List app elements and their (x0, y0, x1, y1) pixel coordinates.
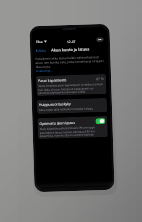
staticText: Optimoitu akun lataus (39, 120, 75, 126)
staticText: Akun kunto ja lataus (51, 46, 90, 53)
staticText: 12.47 (67, 39, 76, 43)
staticText: Paras kapasiteetti (38, 77, 67, 83)
staticText: Akun käyttöiän pidentämiseksi iPhone opp… (40, 125, 106, 137)
staticText: Akku (38, 48, 46, 53)
button[interactable]: Optimoitu akun lataus (37, 116, 108, 139)
staticText: Akku tukee tällä hetkellä normaalia huip… (39, 106, 94, 112)
button[interactable]: Takaisin Akku (35, 48, 46, 53)
staticText: 87 % (96, 76, 104, 81)
button[interactable]: Huippusuorituskyky (37, 98, 107, 114)
staticText: Huippusuorituskyky (39, 101, 71, 107)
button[interactable]: Paras kapasiteetti (36, 74, 107, 96)
staticText: Elisa (36, 40, 43, 44)
button[interactable]: Optimoitu akun lataus (95, 118, 105, 124)
staticText: Lisätietoja... (36, 69, 53, 73)
staticText: Puhelimen akku kuluu kaikki vaihtoehtois… (35, 55, 106, 69)
staticText: Tämä ilmoittaa akun kapasiteetin vertail… (38, 82, 104, 94)
